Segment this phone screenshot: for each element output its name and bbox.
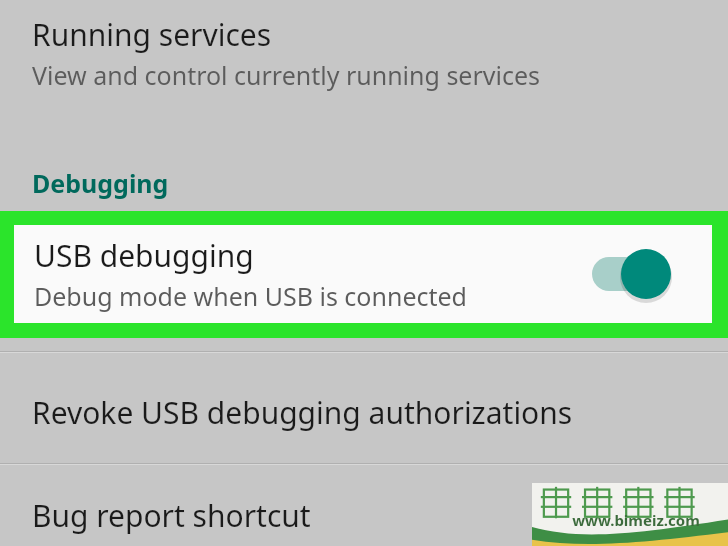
button[interactable]: Bug report shortcut — [0, 465, 728, 546]
staticText: View and control currently running servi… — [32, 58, 541, 92]
staticText: Debugging — [32, 166, 169, 200]
button[interactable]: Running services — [0, 0, 728, 150]
button[interactable]: USB debugging — [14, 225, 712, 323]
button[interactable]: USB debugging toggle, on — [588, 246, 684, 302]
button[interactable]: Revoke USB debugging authorizations — [0, 353, 728, 463]
staticText: USB debugging — [34, 235, 254, 276]
staticText: Bug report shortcut — [32, 495, 311, 536]
staticText: Running services — [32, 14, 272, 55]
staticText: Debug mode when USB is connected — [34, 279, 467, 313]
staticText: Revoke USB debugging authorizations — [32, 392, 573, 433]
staticText: www.bimeiz.com — [538, 510, 728, 530]
